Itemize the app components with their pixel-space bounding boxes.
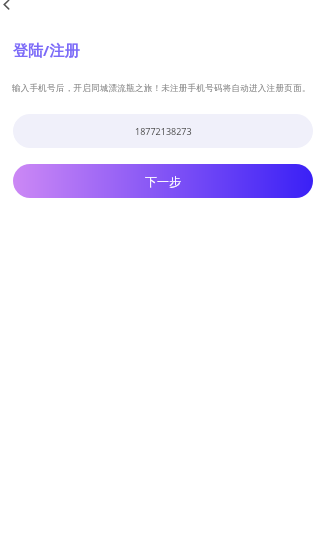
staticText: 输入手机号后，开启同城漂流瓶之旅！未注册手机号码将自动进入注册页面。: [12, 83, 312, 94]
button[interactable]: 18772138273: [13, 114, 313, 148]
button[interactable]: 下一步: [13, 164, 313, 198]
staticText: 登陆/注册: [13, 40, 80, 60]
staticText: 下一步: [145, 174, 181, 189]
button[interactable]: Back: [0, 0, 20, 20]
staticText: 18772138273: [135, 125, 192, 137]
